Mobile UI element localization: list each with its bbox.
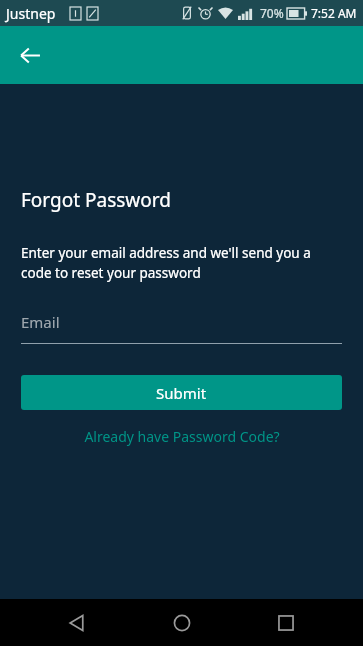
button[interactable]: Home [154,599,210,646]
button[interactable]: Email [21,312,342,344]
button[interactable]: Submit [21,375,342,410]
staticText: Justnep [6,4,56,23]
staticText: Forgot Password [21,187,171,213]
staticText: Already have Password Code? [84,427,280,446]
button[interactable]: Already have Password Code? [21,423,342,449]
button[interactable]: Recent apps [258,599,314,646]
button[interactable]: Back [11,36,49,74]
staticText: Enter your email address and we'll send … [21,244,342,282]
staticText: 70% [260,5,284,21]
staticText: Submit [156,383,207,403]
staticText: Email [21,312,60,332]
staticText: 7:52 AM [311,5,357,21]
button[interactable]: Back [49,599,105,646]
